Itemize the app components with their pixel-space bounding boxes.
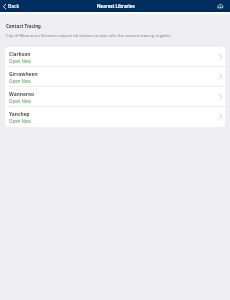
staticText: Open Now: [9, 78, 31, 84]
button[interactable]: Back: [0, 1, 24, 12]
staticText: Back: [8, 3, 20, 10]
staticText: Open Now: [9, 58, 31, 64]
button[interactable]: Clarkson: [5, 47, 225, 67]
button[interactable]: Home: [216, 2, 224, 10]
staticText: Girrawheen: [9, 71, 38, 78]
staticText: Yanchep: [9, 111, 30, 118]
staticText: Nearest Libraries: [97, 3, 135, 9]
staticText: Contact Tracing: [6, 23, 41, 29]
staticText: Wanneroo: [9, 91, 35, 98]
button[interactable]: Wanneroo: [5, 87, 225, 107]
button[interactable]: Girrawheen: [5, 67, 225, 87]
button[interactable]: Yanchep: [5, 107, 225, 127]
staticText: Open Now: [9, 98, 31, 104]
staticText: City of Wanneroo libraries require all v…: [6, 33, 172, 39]
staticText: Clarkson: [9, 51, 31, 58]
staticText: Open Now: [9, 118, 31, 124]
